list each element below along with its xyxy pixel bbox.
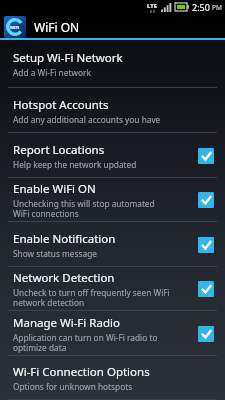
staticText: Add any additional accounts you have [13,114,161,125]
staticText: LTE [147,2,158,10]
button[interactable]: Hotspot Accounts [0,88,225,133]
button[interactable]: Network Detection [0,267,225,311]
staticText: Application can turn on Wi-Fi radio to o… [13,332,158,353]
button[interactable]: Manage Wi-Fi Radio [0,311,225,356]
staticText: Unchecking this will stop automated WiFi… [13,198,155,219]
staticText: Report Locations [13,142,105,158]
staticText: Manage Wi-Fi Radio [13,315,120,331]
staticText: Wi-Fi Connection Options [13,364,150,380]
button[interactable]: Enabled checkbox [198,281,214,297]
button[interactable]: Enabled checkbox [198,237,214,253]
staticText: WIFI [10,25,20,30]
button[interactable]: Enabled checkbox [198,148,214,164]
staticText: Enable Notification [13,231,116,247]
staticText: Enable WiFi ON [13,181,96,197]
staticText: WiFi ON [34,19,80,35]
staticText: Add a Wi-Fi network [13,67,91,78]
staticText: Help keep the network updated [13,159,137,170]
staticText: Options for unknown hotspots [13,381,133,392]
button[interactable]: Wi-Fi Connection Options [0,356,225,400]
staticText: PM [212,3,222,12]
staticText: 2:50 [192,1,210,13]
button[interactable]: Enable WiFi ON [0,178,225,222]
staticText: Network Detection [13,270,115,286]
button[interactable]: Setup Wi-Fi Network [0,40,225,88]
staticText: Show status message [13,248,97,259]
button[interactable]: Enable Notification [0,222,225,267]
staticText: Setup Wi-Fi Network [13,50,123,66]
staticText: Uncheck to turn off frequently seen WiFi… [13,287,170,308]
button[interactable]: WiFi app icon [4,16,26,38]
button[interactable]: Report Locations [0,133,225,178]
button[interactable]: Enabled checkbox [198,326,214,342]
staticText: Hotspot Accounts [13,97,109,113]
button[interactable]: Enabled checkbox [198,192,214,208]
